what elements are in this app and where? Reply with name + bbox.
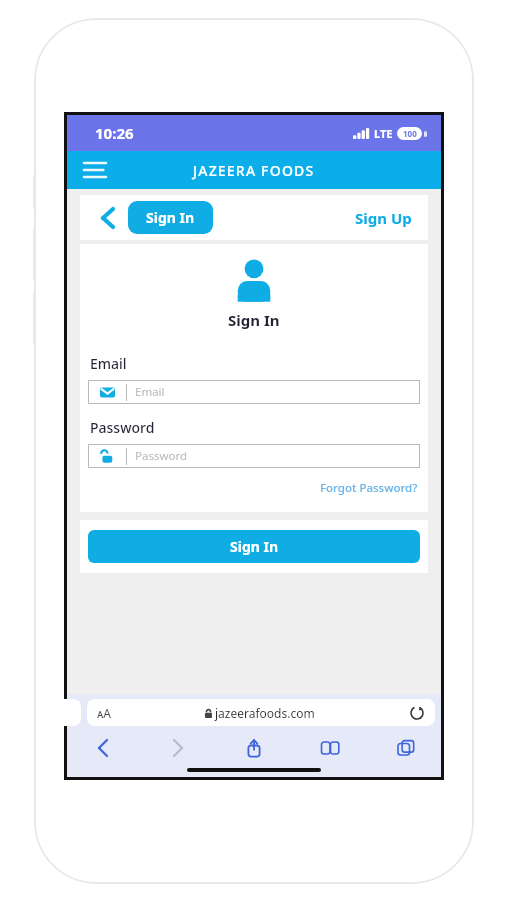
button[interactable]: Email xyxy=(88,380,420,404)
button[interactable]: Menu xyxy=(77,152,113,188)
staticText: Email xyxy=(135,384,165,400)
button[interactable]: Bookmarks xyxy=(313,731,347,765)
staticText: 100 xyxy=(403,128,417,139)
staticText: Sign In xyxy=(146,208,195,227)
button[interactable]: Reload xyxy=(409,705,425,721)
button[interactable]: Sign In xyxy=(88,530,420,563)
button[interactable]: ᴀA xyxy=(87,699,435,726)
staticText: Sign In xyxy=(228,310,280,330)
staticText: Sign Up xyxy=(355,208,412,228)
staticText: jazeerafoods.com xyxy=(215,705,315,721)
staticText: Email xyxy=(90,354,127,373)
button[interactable]: Share xyxy=(237,731,271,765)
staticText: Forgot Password? xyxy=(320,480,418,496)
staticText: ᴀA xyxy=(97,705,111,721)
button[interactable]: Back xyxy=(85,731,119,765)
staticText: JAZEERA FOODS xyxy=(193,161,315,180)
button[interactable]: Sign Up xyxy=(351,202,416,234)
staticText: Password xyxy=(135,448,188,464)
button[interactable]: Forgot Password? xyxy=(318,478,420,498)
button[interactable]: Back xyxy=(92,203,122,233)
staticText: Sign In xyxy=(230,537,279,556)
button[interactable]: Forward xyxy=(161,731,195,765)
staticText: LTE xyxy=(374,126,393,141)
button[interactable]: Tabs xyxy=(389,731,423,765)
button[interactable]: Password xyxy=(88,444,420,468)
staticText: 10:26 xyxy=(95,123,134,143)
staticText: Password xyxy=(90,418,155,437)
button[interactable]: Sign In xyxy=(128,201,213,234)
